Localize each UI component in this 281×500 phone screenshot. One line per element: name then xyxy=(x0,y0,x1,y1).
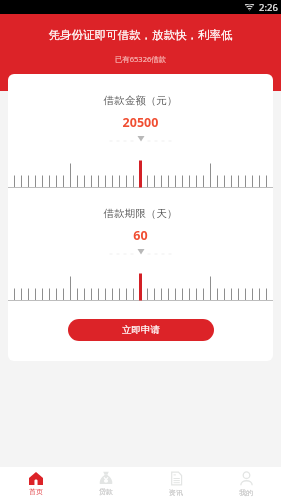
staticText: 2:26 xyxy=(259,1,278,14)
staticText: 我的 xyxy=(239,488,253,497)
staticText: 首页 xyxy=(29,487,43,496)
button[interactable]: 展开 xyxy=(134,136,148,144)
staticText: 立即申请 xyxy=(122,324,160,336)
button[interactable]: 我的 xyxy=(211,467,281,500)
staticText: 凭身份证即可借款，放款快，利率低 xyxy=(0,28,281,42)
button[interactable]: 贷款 xyxy=(71,467,141,500)
staticText: 20500 xyxy=(8,114,273,131)
staticText: 贷款 xyxy=(99,487,113,496)
staticText: 60 xyxy=(8,227,273,244)
staticText: 已有65326借款 xyxy=(0,54,281,64)
button[interactable]: 资讯 xyxy=(141,467,211,500)
staticText: 借款金额（元） xyxy=(8,94,273,107)
button[interactable]: 首页 xyxy=(0,467,71,500)
button[interactable]: 展开 xyxy=(134,249,148,257)
staticText: 借款期限（天） xyxy=(8,207,273,220)
button[interactable]: 立即申请 xyxy=(68,319,214,341)
staticText: 资讯 xyxy=(169,488,183,497)
